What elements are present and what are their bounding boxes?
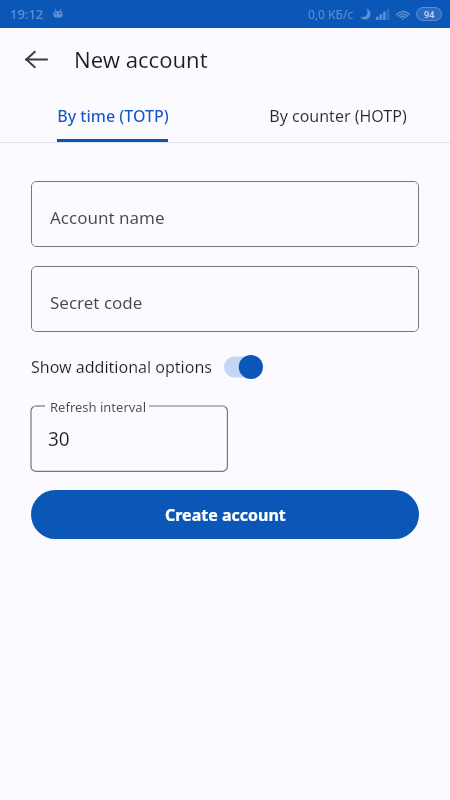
- staticText: New account: [74, 44, 208, 74]
- staticText: 0,0 КБ/с: [308, 6, 354, 22]
- staticText: By time (TOTP): [57, 105, 169, 127]
- staticText: Refresh interval: [50, 398, 147, 416]
- staticText: 19:12: [10, 5, 44, 23]
- button[interactable]: Show additional options toggle: [224, 356, 262, 378]
- button[interactable]: Secret code: [31, 266, 419, 332]
- staticText: Secret code: [50, 291, 143, 314]
- staticText: Account name: [50, 206, 165, 229]
- button[interactable]: Back: [12, 35, 60, 83]
- button[interactable]: By counter (HOTP): [225, 90, 450, 142]
- staticText: 30: [48, 426, 70, 452]
- button[interactable]: Show additional options: [31, 354, 262, 380]
- button[interactable]: Create account: [31, 490, 419, 539]
- staticText: Create account: [165, 504, 286, 526]
- button[interactable]: By time (TOTP): [0, 90, 225, 142]
- button[interactable]: Account name: [31, 181, 419, 247]
- staticText: By counter (HOTP): [269, 105, 407, 127]
- staticText: Show additional options: [31, 356, 212, 378]
- staticText: 94: [424, 8, 435, 20]
